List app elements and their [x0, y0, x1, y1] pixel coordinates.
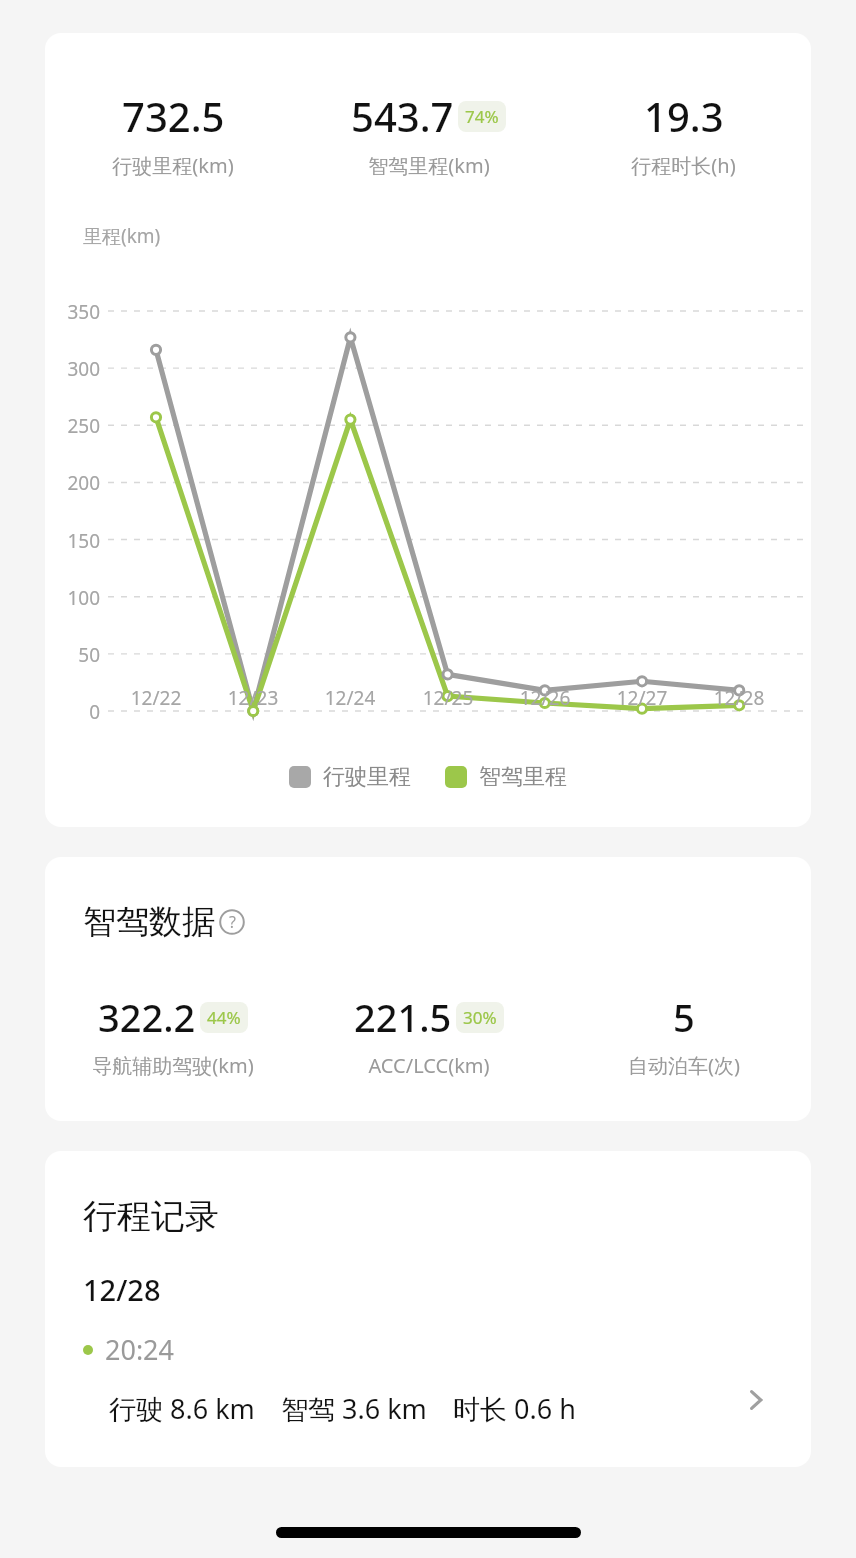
- staticText: 200: [48, 470, 100, 496]
- other: 查看行程详情: [739, 1383, 773, 1417]
- staticText: 行驶里程: [323, 763, 411, 791]
- staticText: 里程(km): [83, 223, 161, 249]
- staticText: 自动泊车(次): [628, 1052, 740, 1079]
- staticText: 30%: [463, 1006, 497, 1029]
- staticText: 732.5: [122, 89, 225, 143]
- staticText: 0: [48, 699, 100, 725]
- staticText: 时长 0.6 h: [453, 1390, 576, 1427]
- button[interactable]: 20:24: [45, 1331, 811, 1427]
- button[interactable]: 说明: [219, 909, 245, 935]
- staticText: 导航辅助驾驶(km): [92, 1052, 254, 1079]
- staticText: 44%: [207, 1006, 241, 1029]
- staticText: 5: [673, 991, 695, 1043]
- staticText: ACC/LCC(km): [368, 1052, 490, 1079]
- staticText: 100: [48, 585, 100, 611]
- staticText: 行驶 8.6 km: [109, 1390, 255, 1427]
- staticText: 350: [48, 299, 100, 325]
- staticText: 322.2: [98, 991, 196, 1043]
- staticText: 行程时长(h): [631, 152, 736, 179]
- staticText: 150: [48, 528, 100, 554]
- staticText: 12/26: [505, 685, 585, 711]
- staticText: 智驾里程(km): [368, 152, 490, 179]
- staticText: 50: [48, 642, 100, 668]
- staticText: 智驾数据: [83, 901, 215, 943]
- staticText: 智驾 3.6 km: [281, 1390, 427, 1427]
- staticText: 12/27: [602, 685, 682, 711]
- staticText: 12/25: [408, 685, 488, 711]
- staticText: 19.3: [644, 89, 724, 143]
- staticText: 12/28: [699, 685, 779, 711]
- staticText: 300: [48, 356, 100, 382]
- staticText: 行驶里程(km): [112, 152, 234, 179]
- staticText: 智驾里程: [479, 763, 567, 791]
- staticText: 12/22: [116, 685, 196, 711]
- staticText: 12/24: [310, 685, 390, 711]
- staticText: 20:24: [105, 1331, 175, 1368]
- staticText: 221.5: [354, 991, 452, 1043]
- staticText: 行程记录: [83, 1195, 219, 1238]
- staticText: 250: [48, 413, 100, 439]
- staticText: 12/23: [213, 685, 293, 711]
- staticText: 74%: [465, 105, 499, 128]
- staticText: 12/28: [83, 1270, 161, 1309]
- staticText: ?: [229, 911, 236, 933]
- staticText: 543.7: [351, 89, 454, 143]
